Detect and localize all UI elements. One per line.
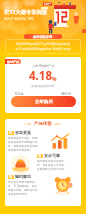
staticText: 人民币理财产品 [32, 64, 55, 68]
staticText: 支持灵活申购与赎回操 作，T+1极速到账，资金 周转不受限，随时应对各 类资金需… [8, 180, 38, 196]
other: Safe and reliable [9, 157, 32, 173]
staticText: 产品优势 [34, 121, 52, 127]
button[interactable]: 立即购买 [11, 96, 76, 107]
button[interactable]: 限时活动专享 [24, 34, 62, 39]
staticText: 02 [38, 154, 42, 158]
staticText: 4.18 [29, 68, 52, 84]
staticText: 部分产品年化4.18% [4, 16, 34, 21]
staticText: 收益更高 [15, 130, 31, 135]
staticText: 立即购买 [35, 99, 53, 104]
staticText: 安全可靠 [44, 153, 60, 158]
staticText: 产品期限 [61, 96, 72, 99]
staticText: 起购金额 [14, 96, 25, 99]
staticText: 业绩比较基准(年化) [31, 84, 55, 88]
staticText: 限时活动专享 [33, 35, 53, 39]
staticText: 银行级风控体系全程护 航，资金由第三方托管， 多重保障让您安心无忧。 [37, 159, 67, 171]
staticText: 精选优质资产组合，预期 收益显著高于同期银行存 款，帮助闲置资金实现稳 健增值与… [8, 136, 38, 152]
staticText: 随时赎回 [15, 174, 31, 179]
staticText: 36个月 [61, 91, 72, 96]
staticText: 热销产品 [7, 60, 19, 64]
staticText: 双12大额专享回馈 [4, 8, 48, 15]
staticText: 5万起 [15, 91, 24, 96]
other: Higher returns [50, 133, 71, 149]
staticText: 03 [9, 175, 13, 179]
staticText: % [52, 76, 57, 83]
staticText: 01 [9, 131, 13, 135]
other: Redeem anytime [53, 174, 74, 195]
staticText: 活动期间购买指定产品可享额外收益加成 不可与其他优惠券叠加使用 详询客户经理 [5, 42, 81, 51]
